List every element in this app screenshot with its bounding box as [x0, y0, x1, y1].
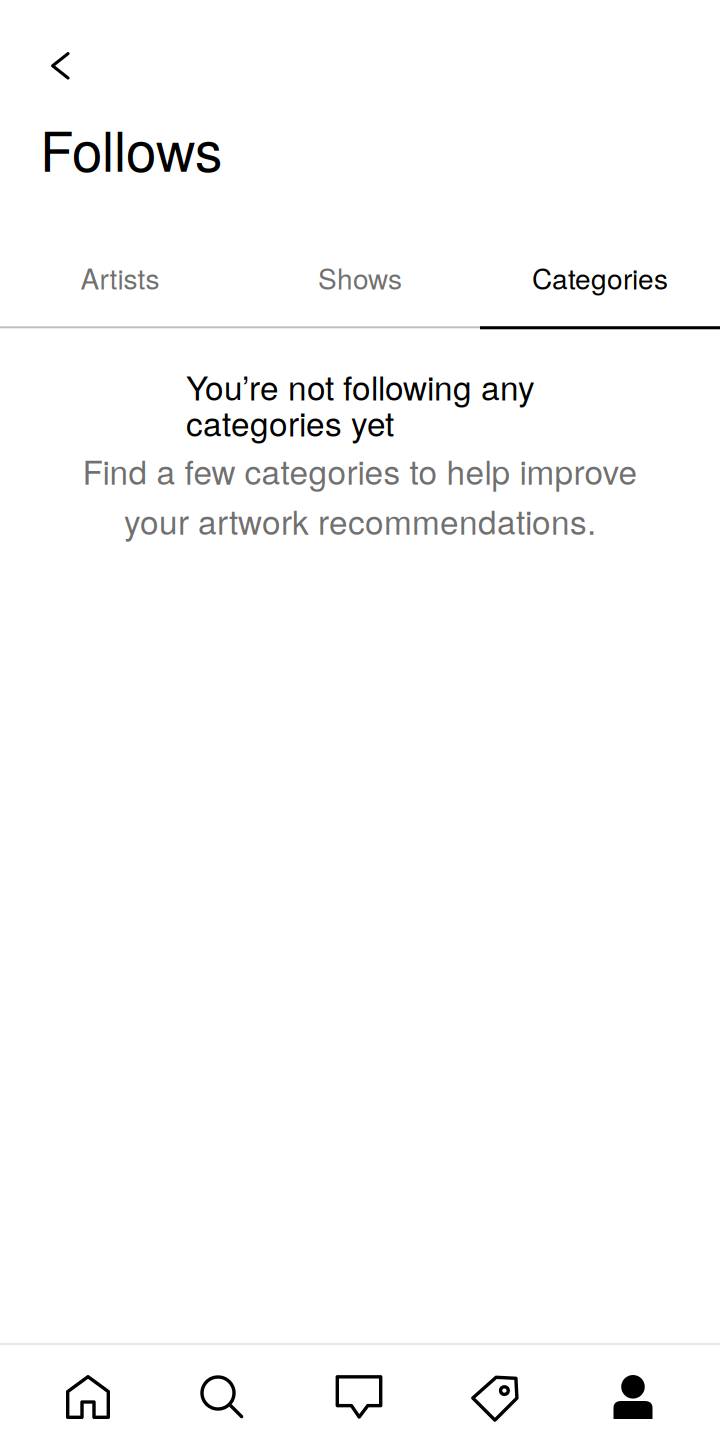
- button[interactable]: Sell: [428, 1345, 564, 1449]
- button[interactable]: Home: [20, 1345, 156, 1449]
- staticText: Find a few categories to help improve: [82, 446, 637, 494]
- staticText: You’re not following any: [186, 362, 535, 410]
- button[interactable]: Artists: [0, 229, 240, 325]
- button[interactable]: Inbox: [292, 1345, 428, 1449]
- button[interactable]: Shows: [240, 229, 480, 325]
- staticText: Artists: [80, 257, 159, 297]
- staticText: Categories: [532, 257, 668, 297]
- button[interactable]: Profile: [564, 1345, 700, 1449]
- staticText: Shows: [318, 257, 402, 297]
- button[interactable]: Back: [0, 0, 88, 88]
- staticText: categories yet: [186, 398, 394, 446]
- staticText: your artwork recommendations.: [124, 496, 596, 544]
- button[interactable]: Categories: [480, 229, 720, 325]
- staticText: Follows: [40, 109, 222, 187]
- button[interactable]: Search: [156, 1345, 292, 1449]
